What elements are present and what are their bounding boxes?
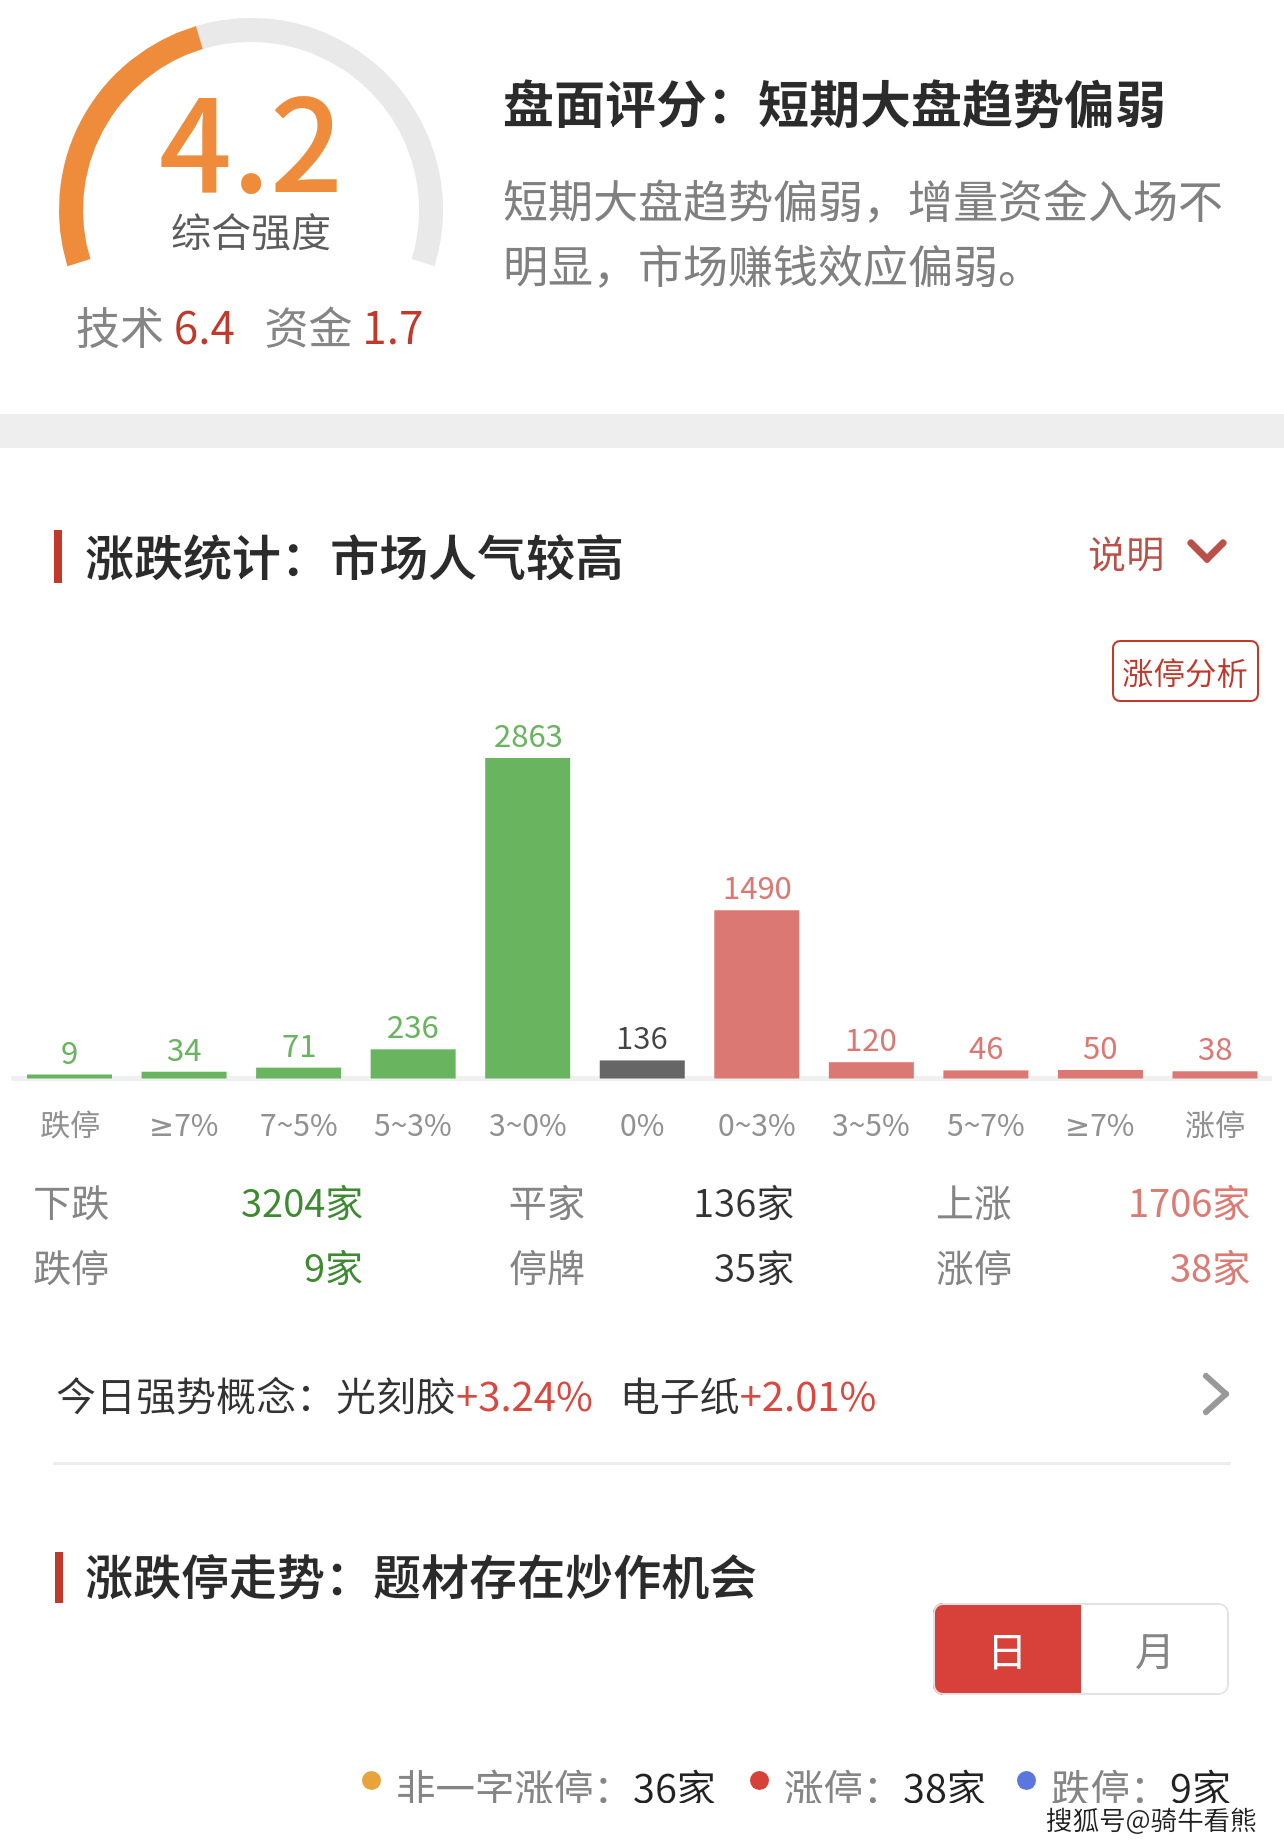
button[interactable]: 月 [1081, 1603, 1229, 1695]
staticText: 跌停： [1051, 1757, 1170, 1803]
staticText: 盘面评分：短期大盘趋势偏弱 [503, 64, 1167, 138]
staticText: 技术 6.4 资金 1.7 [76, 293, 424, 351]
staticText: 9 [61, 1028, 79, 1070]
staticText: 120 [845, 1015, 897, 1057]
staticText: 136家 [693, 1173, 795, 1223]
staticText: 涨跌停走势：题材存在炒作机会 [85, 1539, 758, 1609]
staticText: 下跌 [33, 1173, 110, 1223]
staticText: 3204家 [241, 1173, 364, 1223]
staticText: 日 [987, 1620, 1027, 1678]
staticText: 跌停 [33, 1238, 110, 1288]
staticText: 50 [1083, 1023, 1118, 1065]
staticText: 4.2 [159, 44, 344, 204]
staticText: 136 [616, 1013, 668, 1055]
staticText: ≥7% [1065, 1101, 1135, 1141]
other: More [1204, 1374, 1228, 1414]
staticText: 34 [167, 1025, 202, 1067]
staticText: 9家 [304, 1238, 364, 1288]
staticText: 236 [387, 1002, 439, 1044]
button[interactable]: 日 [933, 1603, 1081, 1695]
staticText: 上涨 [936, 1173, 1013, 1223]
staticText: 38家 [903, 1757, 987, 1803]
staticText: 38家 [1170, 1238, 1251, 1288]
staticText: 38 [1198, 1024, 1233, 1066]
staticText: 停牌 [509, 1238, 586, 1288]
staticText: ≥7% [149, 1101, 219, 1141]
staticText: 2863 [494, 711, 563, 753]
staticText: 35家 [714, 1238, 795, 1288]
staticText: 1490 [723, 863, 792, 905]
staticText: 涨停分析 [1122, 648, 1249, 694]
staticText: 跌停 [40, 1101, 100, 1141]
other: Expand [1187, 539, 1227, 563]
staticText: 0% [620, 1101, 665, 1141]
staticText: 46 [969, 1023, 1004, 1065]
staticText: 71 [282, 1021, 317, 1063]
staticText: 月 [1135, 1620, 1175, 1678]
staticText: 涨停 [936, 1238, 1013, 1288]
staticText: 7~5% [260, 1101, 338, 1141]
staticText: 搜狐号@骑牛看熊 [1046, 1799, 1257, 1837]
staticText: 1706家 [1128, 1173, 1251, 1223]
staticText: 3~5% [832, 1101, 910, 1141]
staticText: 0~3% [718, 1101, 796, 1141]
staticText: 涨停 [1185, 1101, 1245, 1141]
staticText: 综合强度 [171, 201, 331, 259]
staticText: 涨停： [784, 1757, 903, 1803]
staticText: 3~0% [489, 1101, 567, 1141]
staticText: 涨跌统计：市场人气较高 [85, 519, 625, 590]
staticText: 5~3% [374, 1101, 452, 1141]
staticText: 说明 [1088, 524, 1165, 579]
staticText: 平家 [509, 1173, 586, 1223]
staticText: 短期大盘趋势偏弱，增量资金入场不 明显，市场赚钱效应偏弱。 [503, 166, 1273, 296]
staticText: 9家 [1170, 1757, 1232, 1803]
staticText: 非一字涨停： [396, 1757, 633, 1803]
staticText: 5~7% [947, 1101, 1025, 1141]
staticText: 今日强势概念：光刻胶+3.24% 电子纸+2.01% [56, 1365, 877, 1423]
staticText: 36家 [633, 1757, 717, 1803]
button[interactable]: 今日强势概念：光刻胶+3.24% 电子纸+2.01% [0, 1335, 1284, 1453]
button[interactable]: 说明 [1088, 518, 1233, 584]
button[interactable]: 涨停分析 [1112, 640, 1259, 702]
